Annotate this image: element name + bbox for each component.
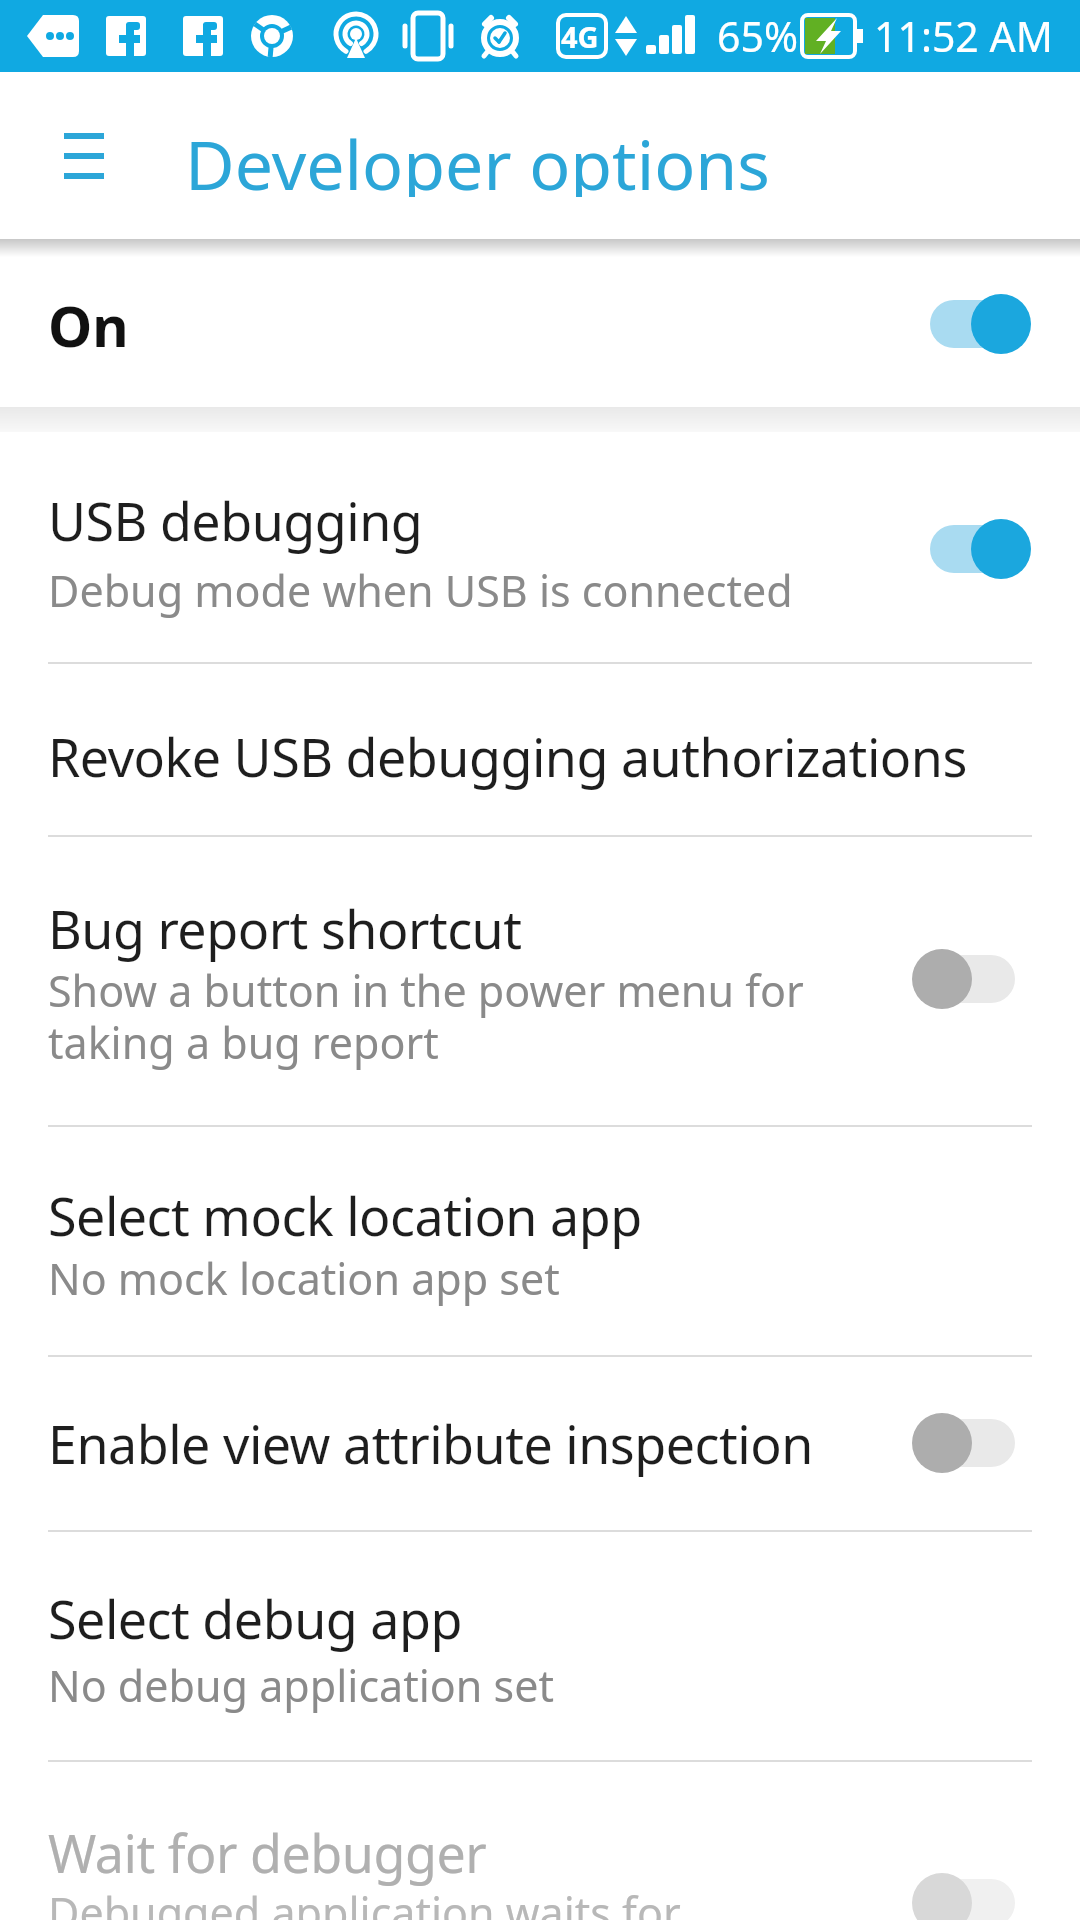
button[interactable]: Select mock location app xyxy=(0,1127,1080,1355)
button[interactable]: USB debugging xyxy=(0,432,1080,662)
staticText: Bug report shortcut xyxy=(48,893,522,964)
staticText: 11:52 AM xyxy=(874,8,1053,64)
button[interactable] xyxy=(40,110,128,202)
staticText: USB debugging xyxy=(48,485,423,556)
button[interactable]: Bug report shortcut xyxy=(0,837,1080,1125)
staticText: Select debug app xyxy=(48,1583,462,1654)
staticText: On xyxy=(48,287,129,363)
staticText: Show a button in the power menu for xyxy=(48,961,804,1020)
button[interactable]: On xyxy=(0,245,1080,407)
staticText: Select mock location app xyxy=(48,1180,642,1251)
staticText: Wait for debugger xyxy=(48,1817,487,1888)
staticText: 4G xyxy=(561,17,599,56)
staticText: No debug application set xyxy=(48,1656,554,1715)
staticText: 65% xyxy=(717,8,798,64)
button[interactable]: Revoke USB debugging authorizations xyxy=(0,664,1080,835)
staticText: No mock location app set xyxy=(48,1249,560,1308)
button[interactable]: Wait for debugger xyxy=(0,1762,1080,1920)
button[interactable]: Enable view attribute inspection xyxy=(0,1357,1080,1530)
staticText: Debug mode when USB is connected xyxy=(48,561,793,620)
staticText: Enable view attribute inspection xyxy=(48,1408,813,1479)
staticText: Debugged application waits for xyxy=(48,1883,681,1920)
staticText: Revoke USB debugging authorizations xyxy=(48,721,967,792)
staticText: taking a bug report xyxy=(48,1013,439,1072)
button[interactable]: Select debug app xyxy=(0,1532,1080,1760)
staticText: Developer options xyxy=(185,117,770,197)
